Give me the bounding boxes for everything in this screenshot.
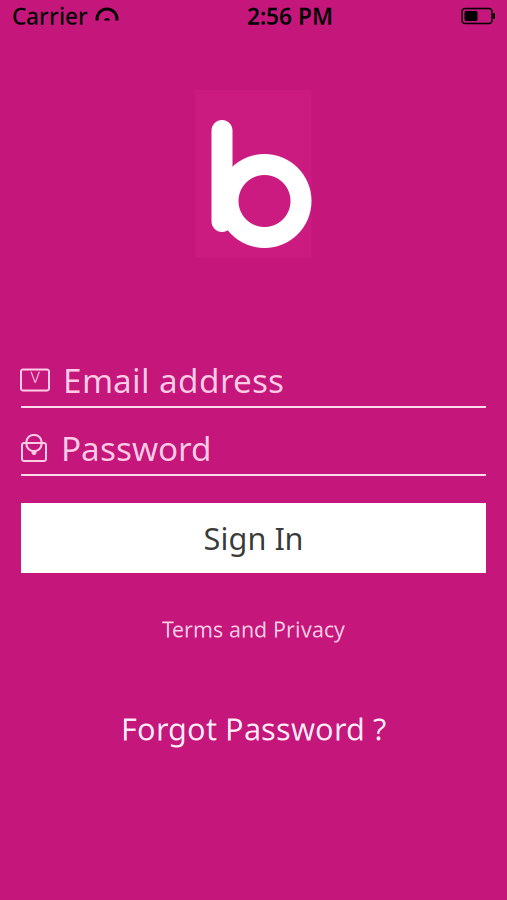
staticText: Carrier — [12, 1, 88, 31]
staticText: Forgot Password ? — [121, 708, 386, 749]
button[interactable]: Forgot Password ? — [105, 702, 402, 755]
staticText: Email address — [63, 358, 284, 402]
staticText: 2:56 PM — [247, 1, 333, 31]
staticText: v — [30, 362, 39, 388]
staticText: Sign In — [203, 518, 303, 558]
button[interactable]: Terms and Privacy — [146, 609, 361, 649]
button[interactable]: Sign In — [0, 503, 507, 573]
staticText: Password — [61, 426, 212, 470]
staticText: Terms and Privacy — [162, 615, 345, 643]
